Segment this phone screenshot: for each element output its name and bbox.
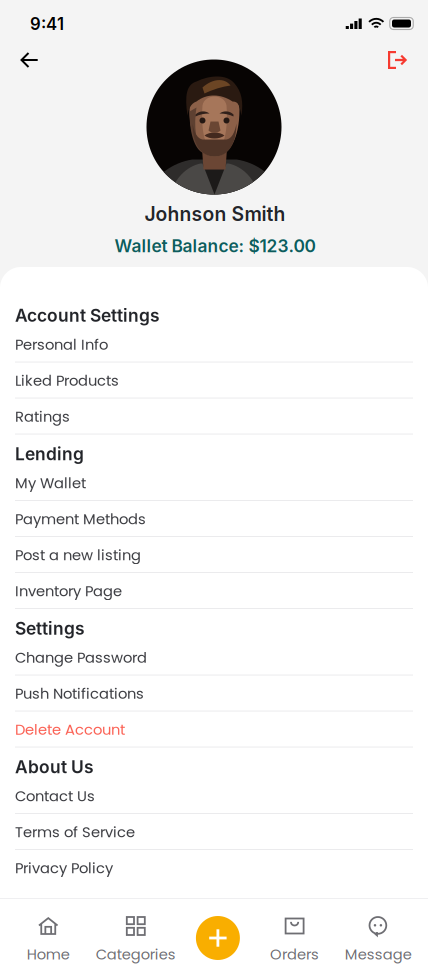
staticText: Personal Info — [15, 334, 108, 355]
staticText: Ratings — [15, 406, 70, 427]
staticText: Home — [27, 944, 70, 964]
staticText: Inventory Page — [15, 581, 122, 601]
button[interactable]: Change Password — [0, 639, 428, 675]
staticText: Liked Products — [15, 370, 119, 391]
button[interactable]: Post a new listing — [0, 537, 428, 573]
button[interactable]: Liked Products — [0, 362, 428, 398]
staticText: Orders — [270, 944, 319, 964]
button[interactable]: Add — [175, 898, 261, 980]
button[interactable]: Privacy Policy — [0, 850, 428, 886]
button[interactable]: Log out — [376, 43, 418, 77]
button[interactable]: Orders — [261, 898, 328, 980]
staticText: Payment Methods — [15, 509, 146, 529]
staticText: Settings — [15, 618, 85, 639]
staticText: Wallet Balance: $123.00 — [114, 235, 315, 256]
staticText: Johnson Smith — [144, 202, 285, 226]
button[interactable]: Contact Us — [0, 778, 428, 814]
staticText: Categories — [96, 944, 176, 964]
button[interactable]: Home — [0, 898, 97, 980]
staticText: About Us — [15, 756, 94, 777]
staticText: Privacy Policy — [15, 858, 113, 878]
staticText: Push Notifications — [15, 683, 144, 704]
staticText: Message — [345, 944, 412, 964]
button[interactable]: Message — [328, 898, 428, 980]
button[interactable]: My Wallet — [0, 465, 428, 501]
staticText: My Wallet — [15, 473, 86, 493]
staticText: Terms of Service — [15, 822, 135, 842]
staticText: Lending — [15, 443, 84, 464]
staticText: Contact Us — [15, 786, 95, 806]
button[interactable]: Back — [8, 43, 50, 77]
staticText: Post a new listing — [15, 545, 141, 565]
staticText: 9:41 — [30, 14, 64, 34]
button[interactable]: Personal Info — [0, 326, 428, 362]
button[interactable]: Payment Methods — [0, 501, 428, 537]
button[interactable]: Categories — [97, 898, 175, 980]
staticText: Change Password — [15, 647, 147, 668]
button[interactable]: Push Notifications — [0, 675, 428, 711]
staticText: Delete Account — [15, 719, 125, 740]
button[interactable]: Terms of Service — [0, 814, 428, 850]
staticText: Account Settings — [15, 305, 160, 326]
button[interactable]: Inventory Page — [0, 573, 428, 609]
button[interactable]: Delete Account — [0, 711, 428, 747]
button[interactable]: Ratings — [0, 398, 428, 434]
